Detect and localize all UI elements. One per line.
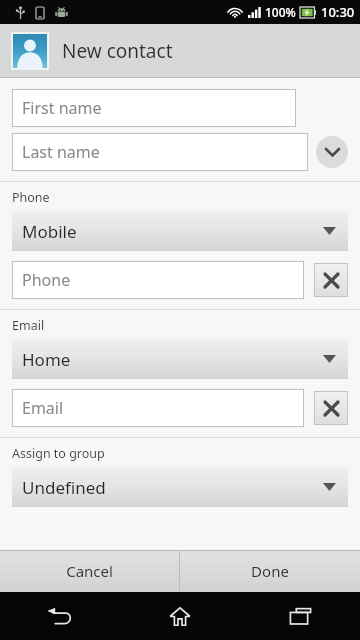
staticText: First name <box>22 97 102 119</box>
button[interactable]: First name <box>12 89 296 127</box>
staticText: Done <box>251 561 289 581</box>
staticText: Undefined <box>22 476 106 499</box>
button[interactable]: Back <box>30 592 90 640</box>
staticText: Phone <box>22 269 71 291</box>
staticText: Cancel <box>66 561 113 581</box>
staticText: Email <box>22 397 64 419</box>
staticText: Mobile <box>22 220 77 243</box>
button[interactable]: Undefined <box>12 467 348 507</box>
button[interactable]: Recent apps <box>270 592 330 640</box>
button[interactable]: Email <box>12 389 304 427</box>
staticText: Assign to group <box>12 445 105 462</box>
button[interactable]: Home <box>12 339 348 379</box>
button[interactable]: Last name <box>12 133 308 171</box>
button[interactable]: Mobile <box>12 211 348 251</box>
button[interactable]: Show more name fields <box>316 136 348 168</box>
button[interactable]: Home <box>150 592 210 640</box>
button[interactable]: Remove field <box>314 263 348 297</box>
button[interactable]: Phone <box>12 261 304 299</box>
staticText: Last name <box>22 141 100 163</box>
staticText: Email <box>12 317 45 334</box>
staticText: 10:30 <box>321 3 355 21</box>
staticText: 100% <box>265 4 296 20</box>
staticText: Home <box>22 348 71 371</box>
button[interactable]: Cancel <box>0 550 179 592</box>
button[interactable]: Done <box>180 550 360 592</box>
staticText: Phone <box>12 189 50 206</box>
button[interactable]: Remove field <box>314 391 348 425</box>
staticText: New contact <box>62 38 173 64</box>
